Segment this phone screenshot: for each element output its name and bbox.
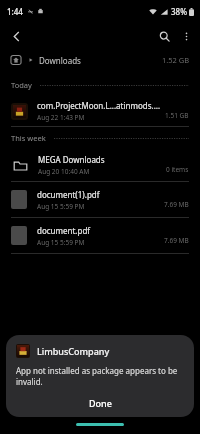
button[interactable]: Done <box>16 392 184 414</box>
staticText: 0 items <box>166 165 189 174</box>
staticText: MEGA Downloads <box>38 154 105 165</box>
staticText: 1:44 <box>7 6 23 17</box>
button[interactable]: Downloads <box>0 50 200 70</box>
staticText: document.pdf <box>37 225 91 236</box>
staticText: Aug 22 1:43 PM <box>37 113 85 122</box>
staticText: Downloads <box>39 55 81 66</box>
button[interactable]: MEGA Downloads <box>0 149 200 181</box>
staticText: Today <box>11 80 32 90</box>
staticText: 1.51 GB <box>165 111 189 120</box>
button[interactable]: document.pdf <box>0 218 200 253</box>
staticText: 38% <box>171 6 187 17</box>
staticText: LimbusCompany <box>37 345 110 357</box>
staticText: Done <box>89 397 112 409</box>
button[interactable]: document(1).pdf <box>0 182 200 217</box>
staticText: com.ProjectMoon.L...atinmods.com.apk <box>37 100 161 111</box>
staticText: document(1).pdf <box>37 189 100 200</box>
staticText: App not installed as package appears to … <box>16 365 184 387</box>
staticText: Aug 15 5:59 PM <box>37 238 85 247</box>
button[interactable]: Search <box>153 25 175 47</box>
button[interactable]: com.ProjectMoon.L...atinmods.com.apk <box>0 96 200 126</box>
staticText: 1.52 GB <box>162 55 190 65</box>
button[interactable]: More options <box>175 25 197 47</box>
staticText: Aug 20 10:40 AM <box>38 167 90 176</box>
staticText: 7.69 MB <box>164 236 189 245</box>
staticText: Aug 15 5:59 PM <box>37 202 85 211</box>
staticText: This week <box>11 133 46 143</box>
staticText: 7.69 MB <box>164 200 189 209</box>
button[interactable]: Back <box>5 25 27 47</box>
